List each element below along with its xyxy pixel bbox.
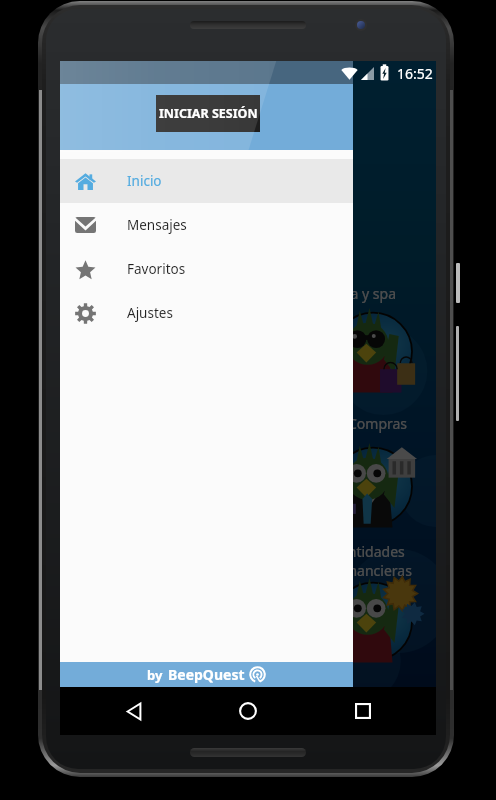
staticText: INICIAR SESIÓN xyxy=(159,105,258,122)
staticText: Inicio xyxy=(127,172,162,190)
button[interactable]: INICIAR SESIÓN xyxy=(156,95,260,132)
button[interactable]: Home xyxy=(232,695,264,727)
button[interactable]: by xyxy=(60,662,353,687)
staticText: Entidades financieras xyxy=(340,542,412,580)
button[interactable]: Inicio xyxy=(60,159,353,203)
staticText: Belleza y spa xyxy=(312,284,396,303)
button[interactable]: Recent apps xyxy=(347,695,379,727)
staticText: 16:52 xyxy=(397,64,433,83)
staticText: Mensajes xyxy=(127,216,187,234)
staticText: Ajustes xyxy=(127,304,173,322)
button[interactable]: Favoritos xyxy=(60,247,353,291)
staticText: Favoritos xyxy=(127,260,186,278)
button[interactable]: Back xyxy=(118,695,150,727)
staticText: Compras xyxy=(348,414,408,433)
staticText: BeepQuest xyxy=(168,665,245,684)
staticText: by xyxy=(147,666,163,684)
button[interactable]: Ajustes xyxy=(60,291,353,335)
button[interactable]: Mensajes xyxy=(60,203,353,247)
